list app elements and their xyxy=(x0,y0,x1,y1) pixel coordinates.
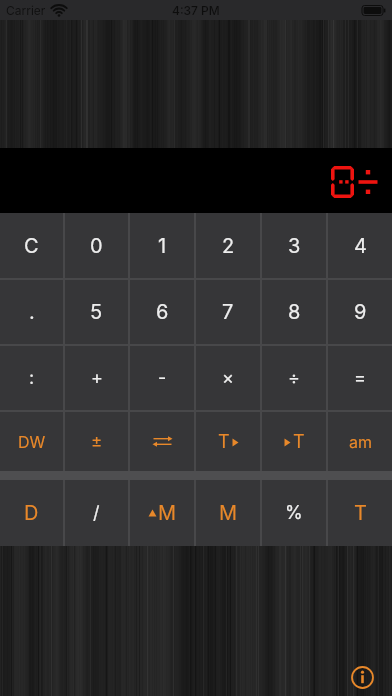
button[interactable]: 8 xyxy=(262,280,326,344)
staticText: 9 xyxy=(354,300,367,324)
button[interactable] xyxy=(351,666,374,689)
staticText: 1 xyxy=(158,234,167,258)
staticText: M xyxy=(158,501,177,525)
staticText: 0 xyxy=(90,234,103,258)
staticText: T xyxy=(354,501,367,525)
staticText: 4:37 PM xyxy=(172,3,220,18)
button[interactable]: C xyxy=(0,213,63,278)
button[interactable]: ÷ xyxy=(262,346,326,410)
staticText: M xyxy=(219,501,238,525)
button[interactable]: . xyxy=(0,280,63,344)
button[interactable]: : xyxy=(0,346,63,410)
staticText: T xyxy=(293,431,305,453)
button[interactable]: 9 xyxy=(328,280,392,344)
button[interactable]: 7 xyxy=(196,280,260,344)
staticText: ÷ xyxy=(288,367,300,389)
button[interactable]: am xyxy=(328,412,392,471)
button[interactable]: = xyxy=(328,346,392,410)
staticText: T xyxy=(218,431,230,453)
staticText: 6 xyxy=(156,300,169,324)
staticText: am xyxy=(349,432,372,451)
staticText: : xyxy=(29,367,35,389)
staticText: - xyxy=(158,367,167,389)
button[interactable]: M xyxy=(130,480,194,546)
staticText: 4 xyxy=(354,234,367,258)
staticText: D xyxy=(24,501,39,525)
staticText: ± xyxy=(91,431,103,452)
staticText: % xyxy=(285,502,303,524)
button[interactable]: DW xyxy=(0,412,63,471)
staticText: + xyxy=(91,367,103,389)
button[interactable]: T xyxy=(196,412,260,471)
staticText: 5 xyxy=(90,300,103,324)
button[interactable]: 5 xyxy=(65,280,128,344)
staticText: 2 xyxy=(222,234,235,258)
button[interactable]: 4 xyxy=(328,213,392,278)
button[interactable]: T xyxy=(262,412,326,471)
button[interactable]: 2 xyxy=(196,213,260,278)
staticText: DW xyxy=(18,432,46,451)
button[interactable]: M xyxy=(196,480,260,546)
staticText: = xyxy=(354,367,366,389)
button[interactable]: T xyxy=(328,480,392,546)
button[interactable]: / xyxy=(65,480,128,546)
button[interactable]: % xyxy=(262,480,326,546)
staticText: / xyxy=(93,502,100,524)
staticText: × xyxy=(222,367,234,389)
button[interactable]: 6 xyxy=(130,280,194,344)
button[interactable]: ± xyxy=(65,412,128,471)
staticText: 7 xyxy=(222,300,234,324)
button[interactable]: - xyxy=(130,346,194,410)
staticText: 3 xyxy=(288,234,301,258)
staticText: Carrier xyxy=(6,3,46,18)
button[interactable]: 3 xyxy=(262,213,326,278)
staticText: C xyxy=(24,234,39,258)
button[interactable]: 1 xyxy=(130,213,194,278)
staticText: . xyxy=(29,300,35,324)
button[interactable]: 0 xyxy=(65,213,128,278)
button[interactable]: + xyxy=(65,346,128,410)
button[interactable]: × xyxy=(196,346,260,410)
button[interactable]: D xyxy=(0,480,63,546)
staticText: 8 xyxy=(288,300,301,324)
button[interactable] xyxy=(130,412,194,471)
